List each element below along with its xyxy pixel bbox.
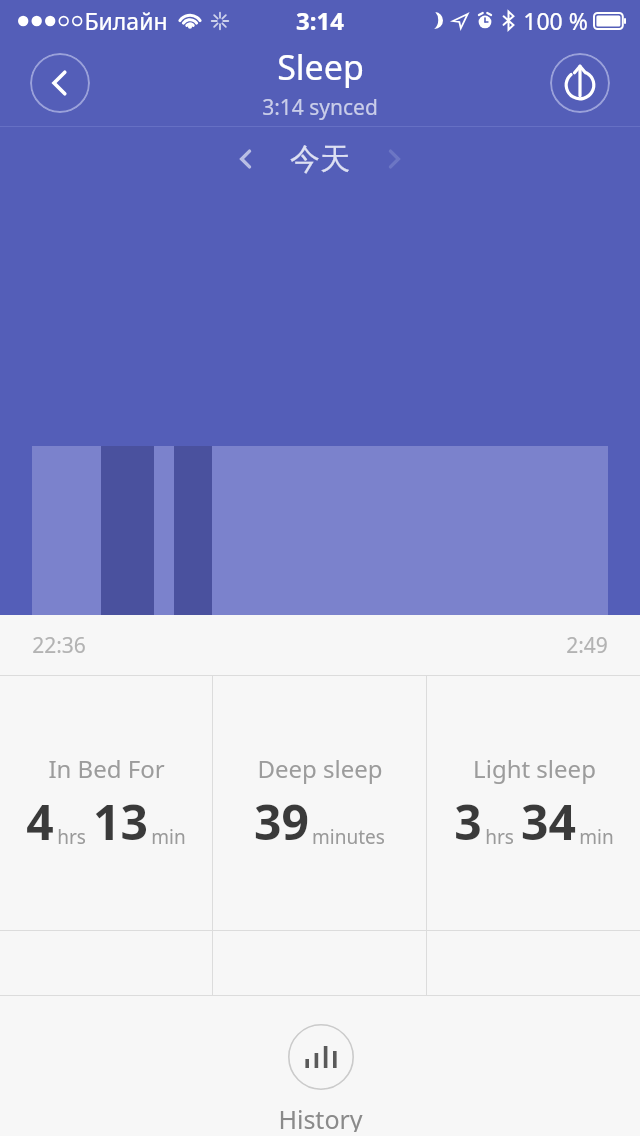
staticText: 2:49 <box>566 631 608 660</box>
staticText: 今天 <box>290 140 350 178</box>
staticText: Light sleep <box>473 752 596 785</box>
button[interactable]: Deep sleep <box>213 675 426 930</box>
staticText: In Bed For <box>48 752 165 785</box>
staticText: 3 <box>454 789 482 854</box>
staticText: hrs <box>485 824 514 850</box>
button[interactable]: History <box>254 1020 387 1136</box>
staticText: min <box>579 824 614 850</box>
button[interactable]: Next day <box>368 133 420 185</box>
button[interactable]: Back <box>30 53 90 113</box>
staticText: hrs <box>57 824 86 850</box>
staticText: 34 <box>521 789 576 854</box>
staticText: Билайн <box>84 5 168 36</box>
staticText: Sleep <box>277 44 364 90</box>
staticText: 39 <box>254 789 309 854</box>
button[interactable]: Sync <box>550 53 610 113</box>
button[interactable]: Light sleep <box>427 675 640 930</box>
button[interactable]: In Bed For <box>0 675 212 930</box>
staticText: 22:36 <box>32 631 86 660</box>
staticText: 100 % <box>523 5 588 36</box>
staticText: 4 <box>26 789 54 854</box>
staticText: History <box>278 1102 363 1132</box>
staticText: 3:14 <box>296 4 344 37</box>
button[interactable]: Previous day <box>220 133 272 185</box>
staticText: 13 <box>93 789 148 854</box>
staticText: Deep sleep <box>257 752 383 785</box>
staticText: 3:14 synced <box>262 93 378 122</box>
staticText: min <box>151 824 186 850</box>
staticText: minutes <box>312 824 385 850</box>
